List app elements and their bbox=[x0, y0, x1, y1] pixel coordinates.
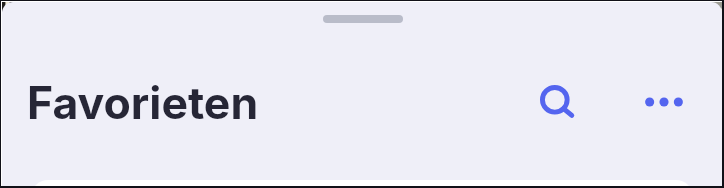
staticText: Favorieten bbox=[27, 76, 259, 130]
button[interactable]: Meer opties bbox=[638, 76, 690, 128]
button[interactable]: Zoeken bbox=[529, 74, 581, 126]
